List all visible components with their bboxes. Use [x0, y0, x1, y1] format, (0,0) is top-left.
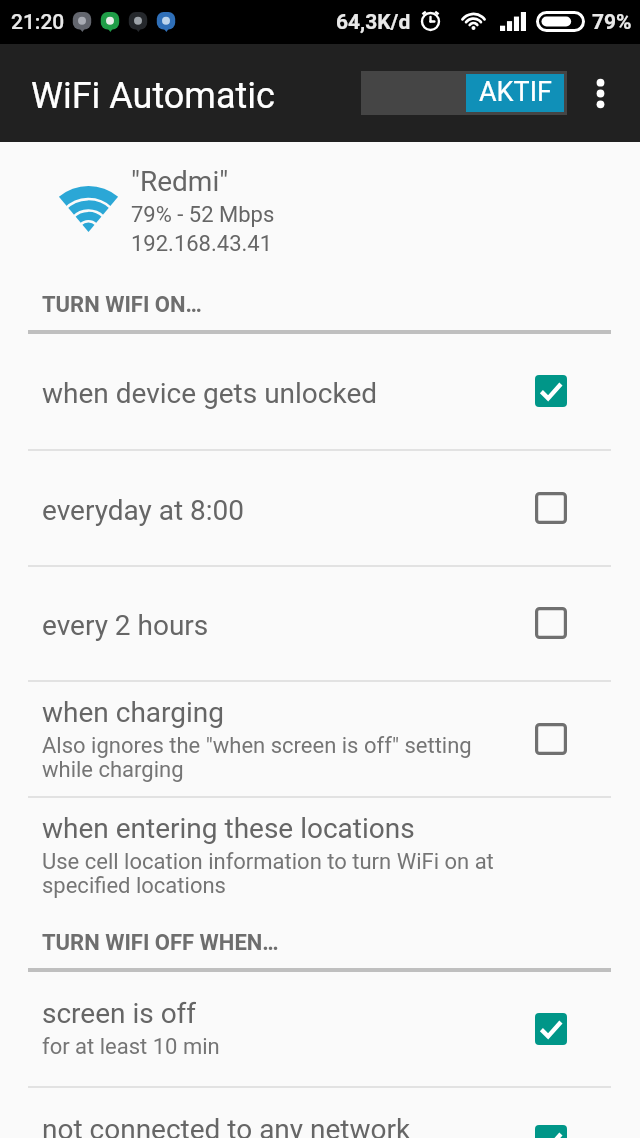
staticText: TURN WIFI ON…: [42, 292, 202, 318]
button[interactable]: every 2 hours: [0, 567, 640, 680]
staticText: 192.168.43.41: [131, 231, 273, 257]
button[interactable]: screen is off: [0, 972, 640, 1086]
staticText: every 2 hours: [42, 609, 209, 642]
button[interactable]: everyday at 8:00: [0, 451, 640, 565]
button[interactable]: every 2 hours: [519, 591, 583, 655]
staticText: Use cell location information to turn Wi…: [42, 849, 494, 898]
button[interactable]: when device gets unlocked: [519, 359, 583, 423]
staticText: "Redmi": [131, 165, 229, 198]
staticText: when entering these locations: [42, 812, 415, 845]
button[interactable]: Toggle WiFi Automatic: [361, 71, 567, 115]
button[interactable]: not connected to any network: [519, 1116, 583, 1138]
staticText: Also ignores the "when screen is off" se…: [42, 733, 472, 782]
button[interactable]: when device gets unlocked: [0, 334, 640, 449]
button[interactable]: More options: [577, 70, 624, 117]
button[interactable]: when entering these locations: [0, 798, 640, 909]
staticText: 21:20: [11, 10, 65, 35]
staticText: for at least 10 min: [42, 1034, 220, 1060]
staticText: AKTIF: [479, 76, 552, 108]
staticText: when device gets unlocked: [42, 377, 378, 410]
staticText: when charging: [42, 696, 224, 729]
staticText: 79%: [592, 10, 632, 35]
staticText: WiFi Automatic: [31, 75, 275, 117]
staticText: not connected to any network: [42, 1113, 411, 1138]
button[interactable]: not connected to any network: [0, 1088, 640, 1138]
staticText: TURN WIFI OFF WHEN…: [42, 930, 279, 956]
button[interactable]: screen is off: [519, 997, 583, 1061]
button[interactable]: when charging: [0, 682, 640, 796]
staticText: screen is off: [42, 997, 197, 1030]
button[interactable]: when charging: [519, 707, 583, 771]
staticText: everyday at 8:00: [42, 494, 245, 527]
staticText: 79% - 52 Mbps: [131, 202, 275, 228]
staticText: 64,3K/d: [336, 10, 411, 35]
button[interactable]: everyday at 8:00: [519, 476, 583, 540]
